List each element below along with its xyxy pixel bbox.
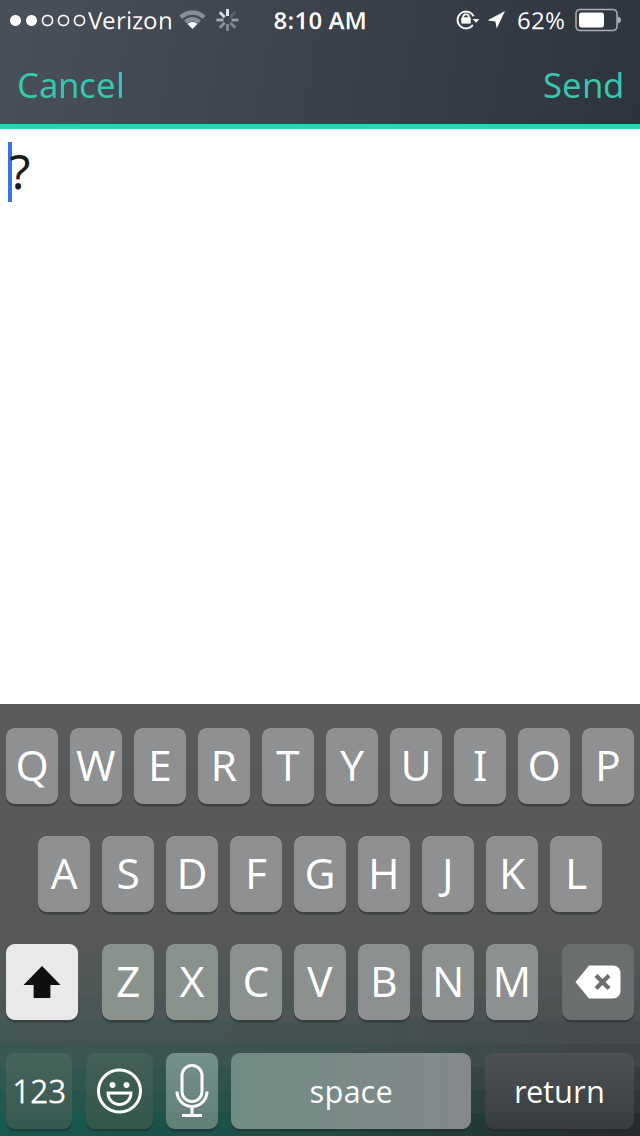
staticText: Cancel xyxy=(17,61,125,107)
staticText: J xyxy=(442,844,454,901)
button[interactable]: Shift xyxy=(6,944,78,1020)
button[interactable]: Y xyxy=(326,728,378,804)
button[interactable]: J xyxy=(422,836,474,912)
button[interactable]: I xyxy=(454,728,506,804)
staticText: A xyxy=(50,844,77,901)
button[interactable]: L xyxy=(550,836,602,912)
button[interactable]: A xyxy=(38,836,90,912)
staticText: H xyxy=(368,844,400,901)
button[interactable]: G xyxy=(294,836,346,912)
staticText: Z xyxy=(116,952,140,1009)
button[interactable]: R xyxy=(198,728,250,804)
button[interactable]: U xyxy=(390,728,442,804)
button[interactable]: Dictate xyxy=(166,1053,218,1129)
button[interactable]: K xyxy=(486,836,538,912)
staticText: F xyxy=(245,844,267,901)
staticText: I xyxy=(473,736,487,793)
button[interactable]: P xyxy=(582,728,634,804)
button[interactable]: 123 xyxy=(6,1053,72,1129)
staticText: S xyxy=(116,844,139,901)
staticText: K xyxy=(499,844,525,901)
staticText: V xyxy=(307,952,333,1009)
button[interactable]: D xyxy=(166,836,218,912)
staticText: G xyxy=(304,844,335,901)
staticText: R xyxy=(210,736,237,793)
staticText: P xyxy=(595,736,621,793)
staticText: E xyxy=(148,736,172,793)
staticText: T xyxy=(276,736,300,793)
staticText: Q xyxy=(15,736,48,793)
button[interactable]: O xyxy=(518,728,570,804)
staticText: X xyxy=(179,952,204,1009)
button[interactable]: F xyxy=(230,836,282,912)
staticText: 62% xyxy=(517,4,565,36)
staticText: U xyxy=(400,736,431,793)
button[interactable]: T xyxy=(262,728,314,804)
button[interactable]: M xyxy=(486,944,538,1020)
button[interactable]: C xyxy=(230,944,282,1020)
button[interactable]: Send xyxy=(543,61,624,107)
staticText: W xyxy=(76,736,116,793)
staticText: 8:10 AM xyxy=(273,4,366,36)
staticText: Y xyxy=(340,736,364,793)
button[interactable]: W xyxy=(70,728,122,804)
button[interactable]: Cancel xyxy=(17,61,125,107)
button[interactable]: Q xyxy=(6,728,58,804)
button[interactable]: V xyxy=(294,944,346,1020)
button[interactable]: Delete xyxy=(562,944,634,1020)
button[interactable]: space xyxy=(231,1053,471,1129)
staticText: N xyxy=(432,952,464,1009)
button[interactable]: E xyxy=(134,728,186,804)
button[interactable]: X xyxy=(166,944,218,1020)
staticText: Verizon xyxy=(88,4,173,36)
staticText: M xyxy=(492,952,531,1009)
staticText: 123 xyxy=(12,1070,66,1112)
button[interactable]: B xyxy=(358,944,410,1020)
staticText: return xyxy=(514,1071,605,1111)
button[interactable]: return xyxy=(485,1053,634,1129)
button[interactable]: S xyxy=(102,836,154,912)
button[interactable]: Z xyxy=(102,944,154,1020)
staticText: B xyxy=(370,952,398,1009)
button[interactable]: N xyxy=(422,944,474,1020)
staticText: ? xyxy=(9,139,30,203)
staticText: C xyxy=(242,952,269,1009)
staticText: D xyxy=(176,844,207,901)
button[interactable]: H xyxy=(358,836,410,912)
staticText: Send xyxy=(543,61,624,107)
staticText: space xyxy=(309,1071,392,1111)
button[interactable]: Emoji xyxy=(86,1053,153,1129)
staticText: L xyxy=(565,844,587,901)
staticText: O xyxy=(527,736,560,793)
